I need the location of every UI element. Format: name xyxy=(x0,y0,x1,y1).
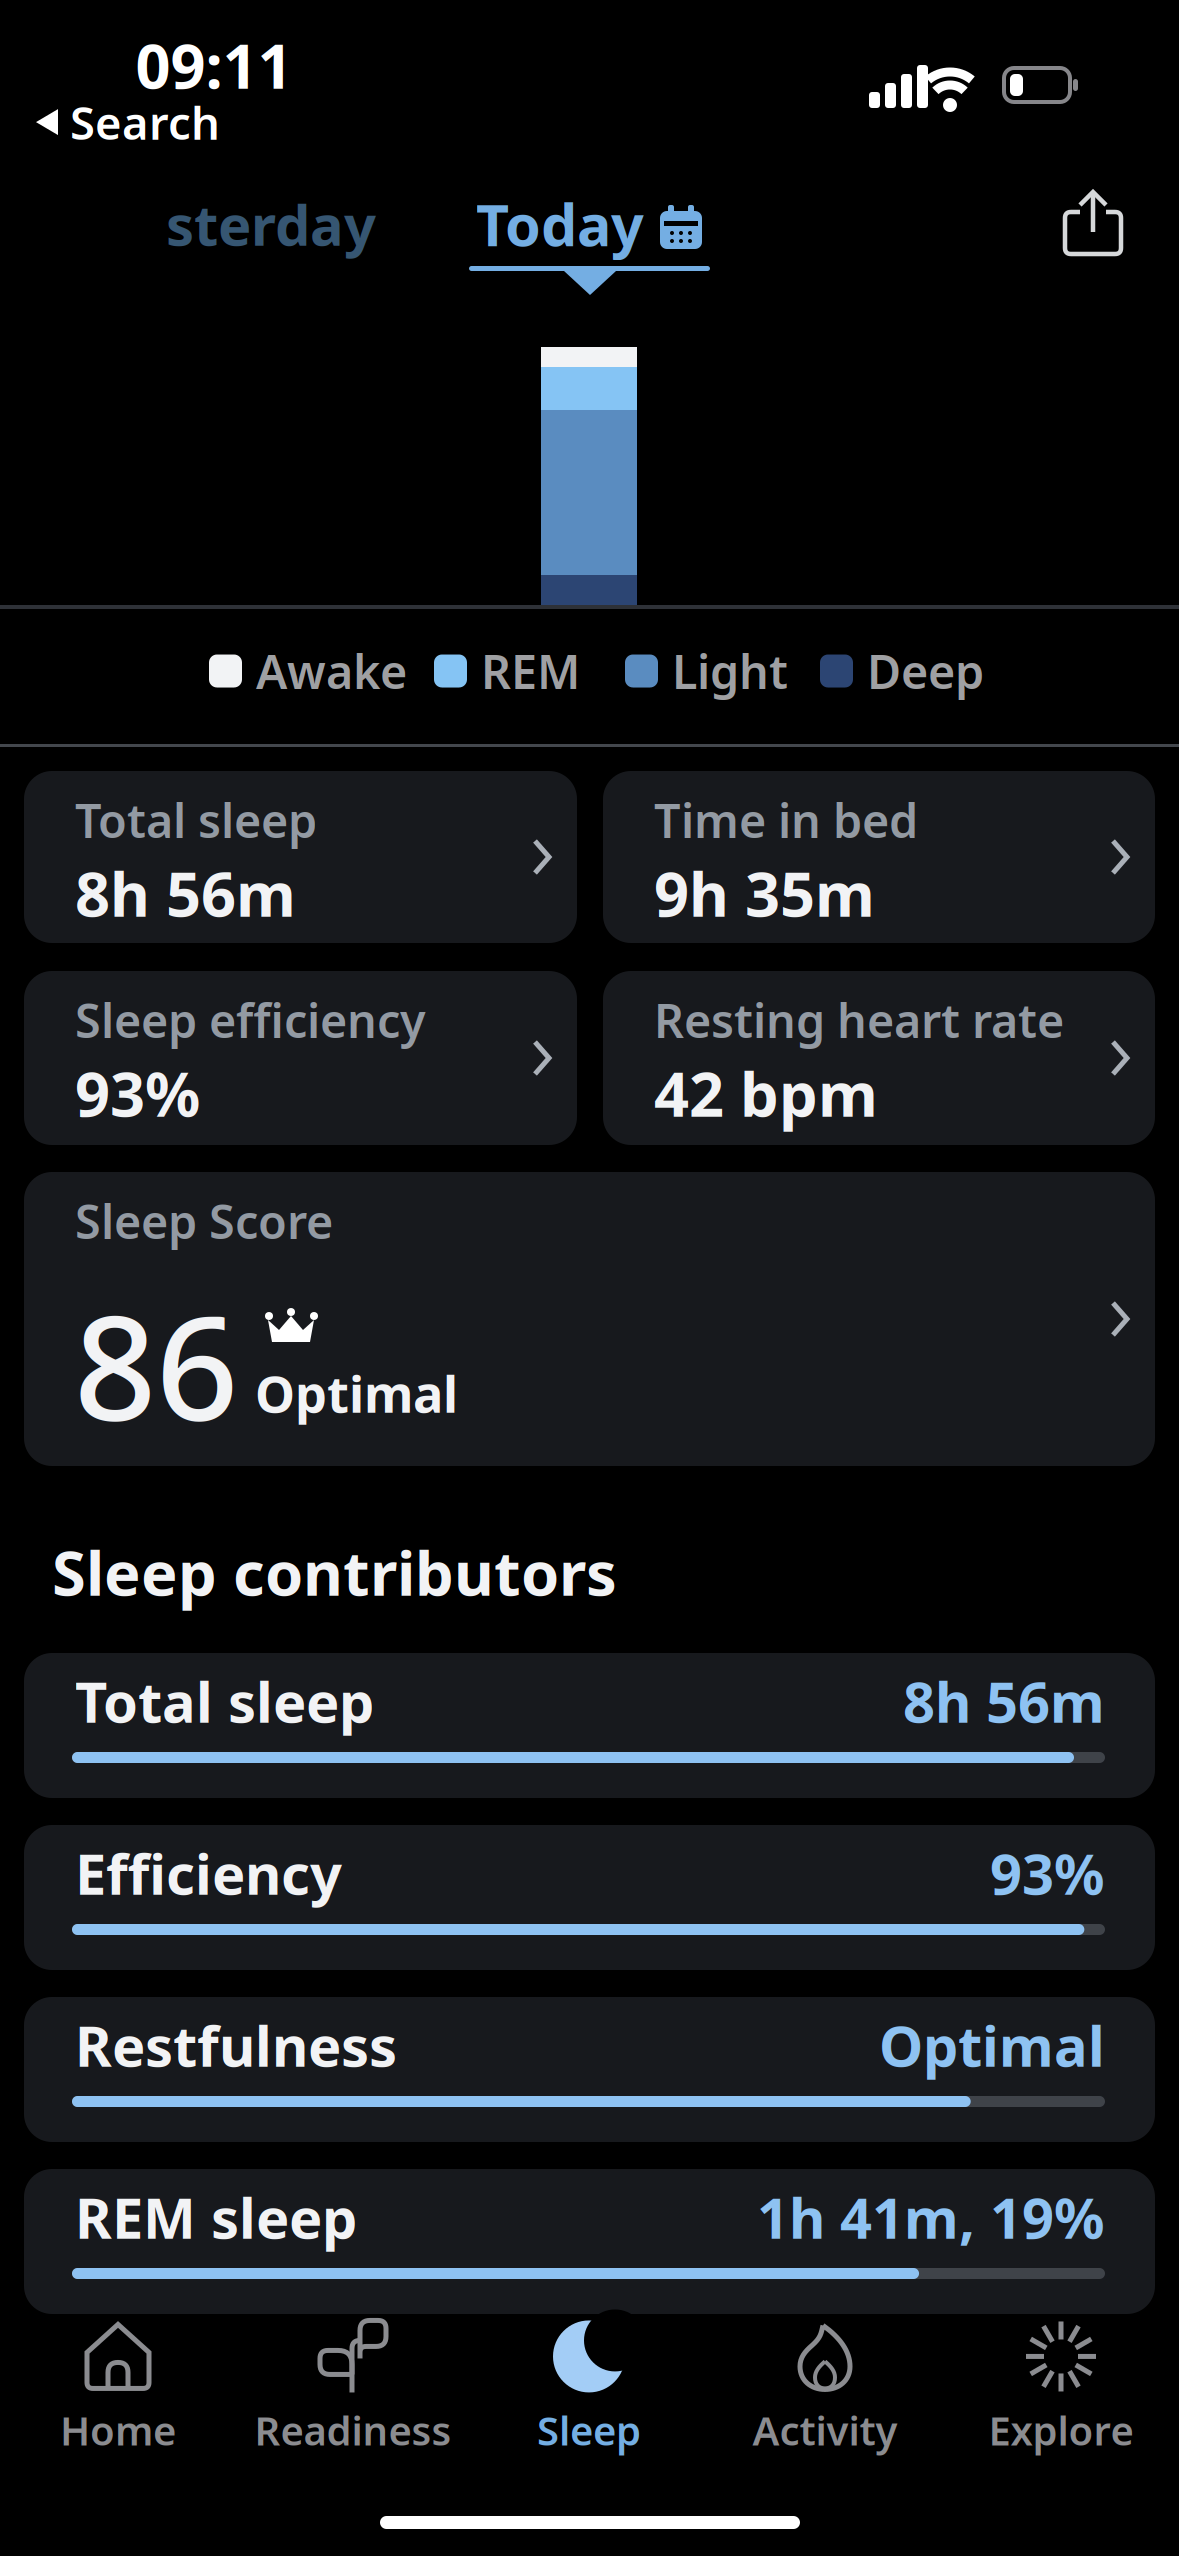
staticText: Time in bed xyxy=(654,789,918,851)
staticText: Resting heart rate xyxy=(654,989,1064,1051)
button[interactable]: Restfulness xyxy=(24,1997,1155,2142)
staticText: Today xyxy=(476,186,644,262)
staticText: Explore xyxy=(988,2403,1133,2456)
staticText: Restfulness xyxy=(75,2008,397,2082)
staticText: 86 xyxy=(74,1269,238,1461)
staticText: 93% xyxy=(990,1836,1105,1910)
staticText: Sleep xyxy=(537,2403,641,2456)
button[interactable]: Resting heart rate xyxy=(603,971,1155,1145)
staticText: REM xyxy=(481,640,580,702)
button[interactable]: Sleep Score xyxy=(24,1172,1155,1466)
staticText: Light xyxy=(672,640,788,702)
staticText: Search xyxy=(70,92,220,152)
button[interactable] xyxy=(1063,190,1123,256)
staticText: Sleep efficiency xyxy=(75,989,426,1051)
staticText: Awake xyxy=(256,640,407,702)
staticText: REM sleep xyxy=(75,2180,357,2254)
button[interactable]: sterday xyxy=(166,196,386,252)
button[interactable]: Total sleep xyxy=(24,771,577,943)
staticText: Optimal xyxy=(879,2008,1105,2082)
button[interactable]: Activity xyxy=(708,2322,942,2452)
staticText: Home xyxy=(60,2403,176,2456)
staticText: Deep xyxy=(867,640,984,702)
button[interactable]: REM sleep xyxy=(24,2169,1155,2314)
staticText: Total sleep xyxy=(75,1664,374,1738)
staticText: sterday xyxy=(166,187,376,261)
button[interactable]: Readiness xyxy=(236,2322,470,2452)
staticText: Activity xyxy=(752,2403,897,2456)
staticText: 09:11 xyxy=(135,24,292,106)
button[interactable]: Total sleep xyxy=(24,1653,1155,1798)
button[interactable]: Explore xyxy=(944,2322,1178,2452)
staticText: 8h 56m xyxy=(903,1664,1105,1738)
staticText: 8h 56m xyxy=(75,852,296,934)
staticText: 42 bpm xyxy=(654,1052,878,1134)
button[interactable]: Efficiency xyxy=(24,1825,1155,1970)
button[interactable]: Time in bed xyxy=(603,771,1155,943)
staticText: Readiness xyxy=(254,2403,451,2456)
staticText: Sleep contributors xyxy=(52,1531,617,1613)
button[interactable]: Home xyxy=(1,2322,235,2452)
staticText: Efficiency xyxy=(75,1836,342,1910)
staticText: Optimal xyxy=(255,1359,458,1427)
staticText: 9h 35m xyxy=(654,852,875,934)
button[interactable]: Today xyxy=(459,196,719,252)
staticText: 1h 41m, 19% xyxy=(757,2180,1105,2254)
button[interactable]: Sleep xyxy=(472,2322,706,2452)
staticText: Sleep Score xyxy=(75,1190,333,1252)
button[interactable]: Search xyxy=(36,92,220,152)
button[interactable]: Sleep efficiency xyxy=(24,971,577,1145)
staticText: Total sleep xyxy=(75,789,317,851)
staticText: 93% xyxy=(75,1052,200,1134)
